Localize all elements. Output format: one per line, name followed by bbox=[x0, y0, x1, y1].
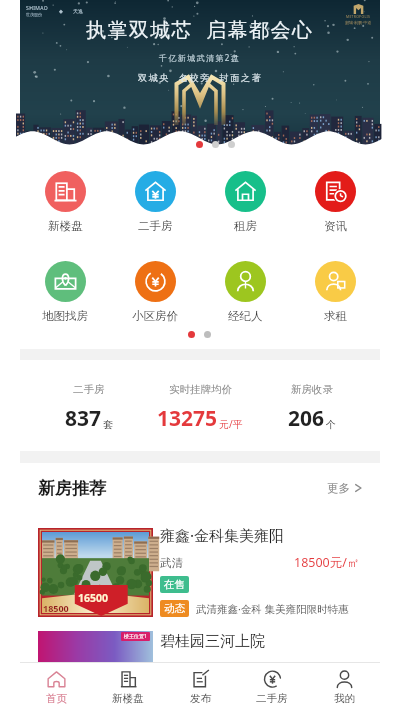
staticText: 新房推荐 bbox=[38, 478, 106, 499]
staticText: 二手房 bbox=[73, 383, 105, 396]
staticText: 我的 bbox=[334, 692, 355, 705]
staticText: 首页 bbox=[46, 692, 67, 705]
button[interactable]: 地图找房 bbox=[20, 261, 110, 323]
button[interactable]: 更多 bbox=[327, 477, 362, 499]
staticText: 元/平 bbox=[219, 417, 243, 431]
staticText: 二手房 bbox=[138, 219, 173, 233]
staticText: 二手房 bbox=[256, 692, 288, 705]
button[interactable]: 求租 bbox=[290, 261, 380, 323]
staticText: 雍鑫·金科集美雍阳 bbox=[160, 525, 285, 545]
staticText: 武清雍鑫·金科 集美雍阳限时特惠 bbox=[196, 602, 349, 616]
button[interactable]: 16500 bbox=[20, 528, 380, 620]
staticText: 小区房价 bbox=[132, 309, 178, 323]
staticText: 经纪人 bbox=[228, 309, 263, 323]
button[interactable]: 发布 bbox=[164, 670, 236, 705]
staticText: 18500元/㎡ bbox=[294, 554, 360, 571]
staticText: 16500 bbox=[78, 591, 109, 605]
staticText: 13275 bbox=[157, 404, 218, 433]
staticText: METROPOLIS bbox=[346, 14, 371, 19]
staticText: 求租 bbox=[324, 309, 347, 323]
staticText: 执掌双城芯 启幕都会心 bbox=[86, 16, 314, 43]
staticText: 套 bbox=[103, 418, 113, 431]
staticText: 更多 bbox=[327, 481, 350, 495]
staticText: 动态 bbox=[164, 602, 185, 615]
staticText: 在售 bbox=[164, 578, 185, 591]
button[interactable]: 楼王位置1 bbox=[20, 631, 380, 711]
staticText: 地图找房 bbox=[42, 309, 88, 323]
button[interactable]: 资讯 bbox=[290, 171, 380, 233]
staticText: 个 bbox=[326, 418, 336, 431]
button[interactable]: 新楼盘 bbox=[92, 670, 164, 705]
staticText: 837 bbox=[65, 404, 102, 433]
staticText: 双城央 名校旁 封面之著 bbox=[138, 71, 263, 83]
staticText: ◆ bbox=[59, 8, 63, 14]
staticText: 千亿新城武清第2盘 bbox=[159, 52, 241, 63]
staticText: 206 bbox=[288, 404, 325, 433]
button[interactable]: 小区房价 bbox=[110, 261, 200, 323]
button[interactable]: 租房 bbox=[200, 171, 290, 233]
staticText: 实时挂牌均价 bbox=[169, 383, 232, 396]
staticText: 武清 bbox=[160, 556, 183, 570]
staticText: 世茂股份 bbox=[26, 12, 42, 17]
button[interactable]: 经纪人 bbox=[200, 261, 290, 323]
staticText: 碧桂园三河上院 bbox=[160, 632, 265, 651]
staticText: 资讯 bbox=[324, 219, 347, 233]
button[interactable]: 我的 bbox=[308, 670, 380, 705]
staticText: 楼王位置1 bbox=[124, 633, 147, 640]
button[interactable]: 二手房 bbox=[110, 171, 200, 233]
button[interactable]: 二手房 bbox=[236, 670, 308, 705]
button[interactable]: 新楼盘 bbox=[20, 171, 110, 233]
staticText: 发布 bbox=[190, 692, 211, 705]
staticText: 新城·利鹏·中道 bbox=[345, 20, 372, 25]
staticText: 新楼盘 bbox=[48, 219, 83, 233]
staticText: 天逸 bbox=[73, 8, 83, 14]
staticText: 18500 bbox=[43, 602, 69, 614]
staticText: SHIMAO bbox=[26, 5, 49, 12]
staticText: 租房 bbox=[234, 219, 257, 233]
button[interactable]: 首页 bbox=[20, 670, 92, 705]
staticText: 新楼盘 bbox=[112, 692, 144, 705]
staticText: 新房收录 bbox=[291, 383, 333, 396]
